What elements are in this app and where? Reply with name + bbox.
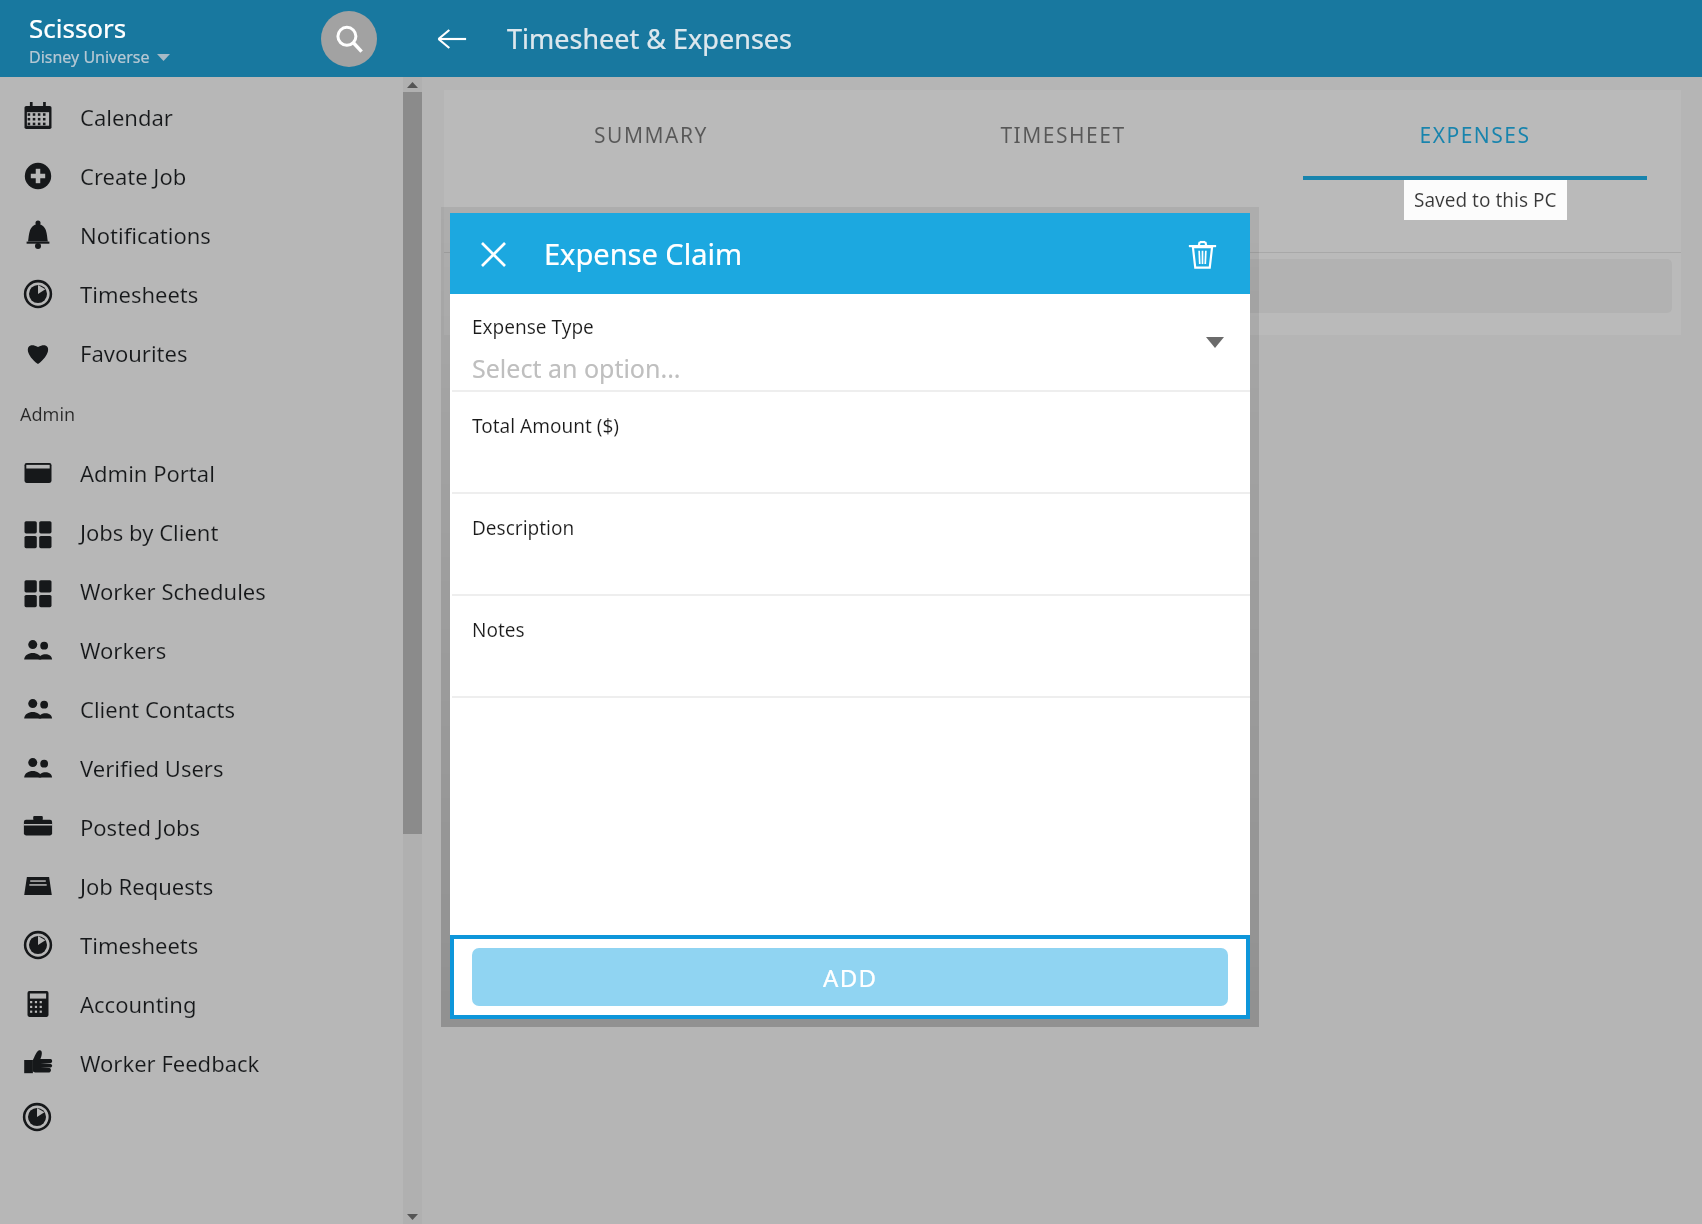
button[interactable]: SUMMARY <box>444 90 857 180</box>
staticText: Notes <box>472 617 525 643</box>
staticText: Saved to this PC <box>1414 187 1557 213</box>
staticText: Workers <box>80 635 167 665</box>
staticText: Admin <box>20 402 76 427</box>
button[interactable]: Jobs by Client <box>0 502 403 561</box>
staticText: or. <box>1216 210 1241 240</box>
staticText: Expense Type <box>472 314 594 340</box>
button[interactable]: Timesheets <box>0 915 403 974</box>
staticText: Verified Users <box>80 753 224 783</box>
staticText: Disney Universe <box>29 46 150 68</box>
button[interactable]: Posted Jobs <box>0 797 403 856</box>
staticText: Timesheets <box>80 930 199 960</box>
button[interactable]: ADD <box>450 935 1250 1019</box>
staticText: Worker Schedules <box>80 576 266 606</box>
staticText: Timesheets <box>80 279 199 309</box>
staticText: Timesheet & Expenses <box>507 20 792 57</box>
button[interactable]: Favourites <box>0 323 403 382</box>
button[interactable]: Back <box>427 14 477 64</box>
button[interactable]: Job Requests <box>0 856 403 915</box>
button[interactable]: Expense Type <box>450 294 1250 390</box>
button[interactable]: Total Amount ($) <box>450 392 1250 492</box>
button[interactable]: Workers <box>0 620 403 679</box>
staticText: EXPENSES <box>1419 121 1531 150</box>
staticText: TIMESHEET <box>1000 121 1126 150</box>
staticText: Client Contacts <box>80 694 236 724</box>
button[interactable]: Verified Users <box>0 738 403 797</box>
staticText: Admin Portal <box>80 458 215 488</box>
staticText: SUMMARY <box>594 121 708 150</box>
staticText: Job Requests <box>80 871 214 901</box>
button[interactable]: Create Job <box>0 146 403 205</box>
staticText: Description <box>472 515 575 541</box>
button[interactable]: Client Contacts <box>0 679 403 738</box>
button[interactable]: TIMESHEET <box>857 90 1269 180</box>
button[interactable]: Worker Feedback <box>0 1033 403 1092</box>
button[interactable]: Delete <box>1176 228 1228 280</box>
button[interactable]: Calendar <box>0 87 403 146</box>
staticText: Favourites <box>80 338 188 368</box>
staticText: Notifications <box>80 220 211 250</box>
staticText: Accounting <box>80 989 197 1019</box>
staticText: Select an option... <box>472 351 681 385</box>
staticText: Calendar <box>80 102 173 132</box>
staticText: Total Amount ($) <box>472 413 620 439</box>
staticText: Create Job <box>80 161 187 191</box>
button[interactable]: Notifications <box>0 205 403 264</box>
button[interactable]: Accounting <box>0 974 403 1033</box>
staticText: ADD <box>823 961 878 994</box>
staticText: Jobs by Client <box>80 517 219 547</box>
button[interactable]: Notes <box>450 596 1250 696</box>
staticText: Posted Jobs <box>80 812 201 842</box>
button[interactable]: Worker Schedules <box>0 561 403 620</box>
button[interactable]: Close <box>468 229 518 279</box>
button[interactable]: EXPENSES <box>1269 90 1681 180</box>
staticText: Expense Claim <box>544 234 743 273</box>
button[interactable]: Description <box>450 494 1250 594</box>
staticText: Scissors <box>29 10 127 45</box>
button[interactable]: Admin Portal <box>0 443 403 502</box>
button[interactable]: Timesheets <box>0 264 403 323</box>
button[interactable]: Search <box>321 11 377 67</box>
staticText: Worker Feedback <box>80 1048 260 1078</box>
